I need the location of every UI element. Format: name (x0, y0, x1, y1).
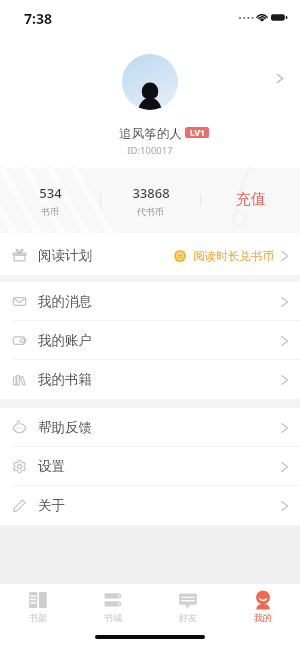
staticText: 7:38 (24, 9, 52, 28)
button[interactable]: 书架 (0, 584, 75, 628)
staticText: 关于 (38, 497, 65, 514)
button[interactable]: 我的书籍 (0, 360, 300, 399)
staticText: 充值 (236, 190, 266, 209)
button[interactable]: 我的 (225, 584, 300, 628)
button[interactable]: 追风筝的人 (0, 34, 300, 168)
staticText: 设置 (38, 458, 65, 475)
staticText: ID:100017 (127, 144, 173, 157)
button[interactable]: 设置 (0, 447, 300, 486)
staticText: 追风筝的人 (119, 126, 182, 142)
staticText: 阅读时长兑书币 (193, 249, 274, 263)
staticText: 好友 (179, 612, 197, 623)
staticText: 我的 (254, 612, 272, 623)
button[interactable]: 好友 (150, 584, 225, 628)
staticText: 我的账户 (38, 332, 92, 349)
button[interactable]: 关于 (0, 486, 300, 525)
staticText: 书架 (29, 612, 47, 623)
staticText: 我的书籍 (38, 371, 92, 388)
staticText: 书城 (104, 612, 122, 623)
button[interactable]: 我的账户 (0, 321, 300, 360)
staticText: 我的消息 (38, 293, 92, 310)
button[interactable]: 阅读计划 (0, 236, 300, 275)
staticText: 代书币 (137, 206, 164, 217)
staticText: 书币 (41, 206, 59, 217)
button[interactable]: 我的消息 (0, 282, 300, 321)
button[interactable]: 书城 (75, 584, 150, 628)
staticText: 534 (39, 184, 62, 202)
staticText: 阅读计划 (38, 247, 92, 264)
button[interactable]: Open profile details (266, 65, 292, 91)
staticText: LV1 (190, 127, 205, 138)
button[interactable]: 帮助反馈 (0, 408, 300, 447)
button[interactable]: 充值 (201, 168, 300, 233)
staticText: 33868 (132, 184, 170, 202)
staticText: 帮助反馈 (38, 419, 92, 436)
